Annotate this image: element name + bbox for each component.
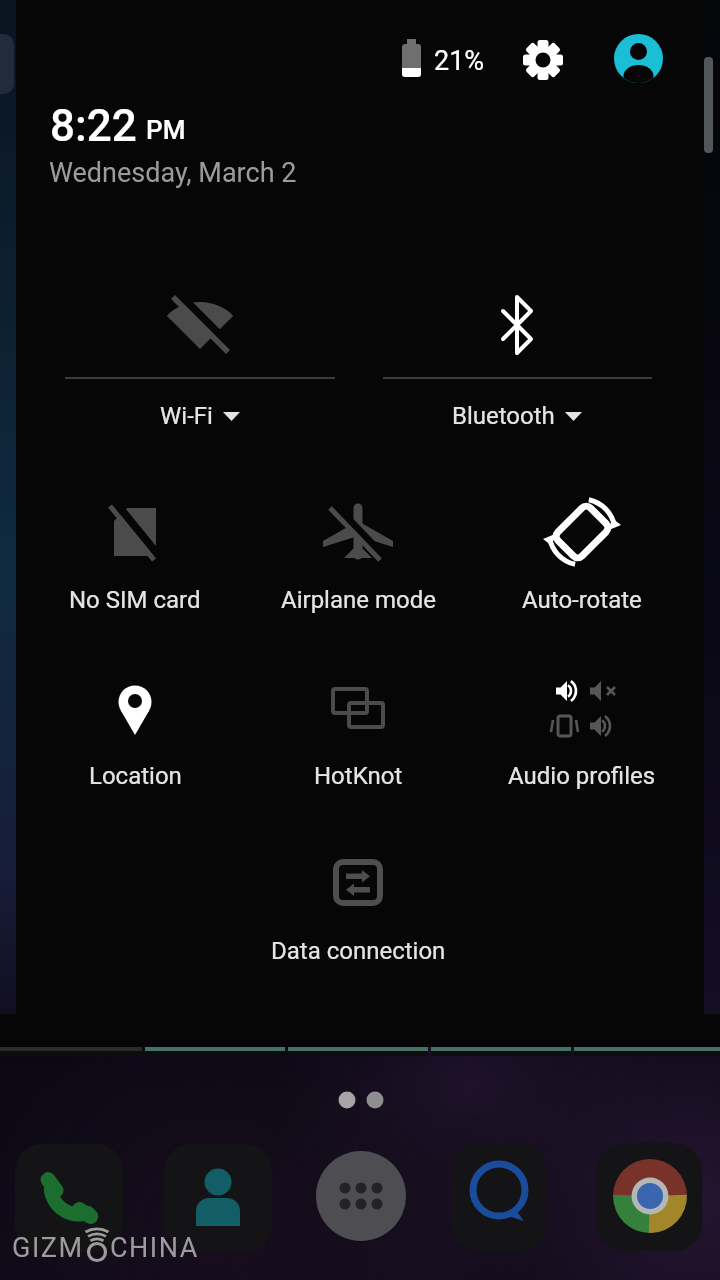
button[interactable]: HotKnot <box>218 650 498 802</box>
staticText: HotKnot <box>314 762 403 790</box>
staticText: Data connection <box>271 937 446 965</box>
button[interactable] <box>614 34 663 83</box>
button[interactable]: Location <box>16 650 275 802</box>
staticText: Wednesday, March 2 <box>49 157 297 189</box>
staticText: Audio profiles <box>508 762 656 790</box>
staticText: CHINA <box>110 1232 199 1264</box>
button[interactable] <box>597 1143 703 1249</box>
button[interactable] <box>15 1144 123 1252</box>
button[interactable] <box>164 1144 272 1252</box>
button[interactable]: Bluetooth <box>377 264 657 442</box>
button[interactable]: Wi-Fi <box>60 264 340 442</box>
button[interactable]: Audio profiles <box>442 650 704 802</box>
button[interactable] <box>313 1148 409 1244</box>
staticText: PM <box>146 115 186 145</box>
staticText: GIZM <box>12 1232 84 1264</box>
button[interactable]: No SIM card <box>16 474 275 626</box>
staticText: Location <box>89 762 182 790</box>
button[interactable]: Auto-rotate <box>442 474 704 626</box>
staticText: No SIM card <box>69 586 201 614</box>
button[interactable] <box>521 38 565 82</box>
staticText: Airplane mode <box>281 586 436 614</box>
staticText: Auto-rotate <box>522 586 642 614</box>
button[interactable] <box>451 1143 547 1239</box>
staticText: Wi-Fi <box>160 402 213 430</box>
staticText: 8:22 <box>50 100 137 152</box>
staticText: Bluetooth <box>452 402 555 430</box>
button[interactable]: Airplane mode <box>218 474 498 626</box>
button[interactable]: Data connection <box>218 825 498 977</box>
staticText: 21% <box>434 45 485 77</box>
